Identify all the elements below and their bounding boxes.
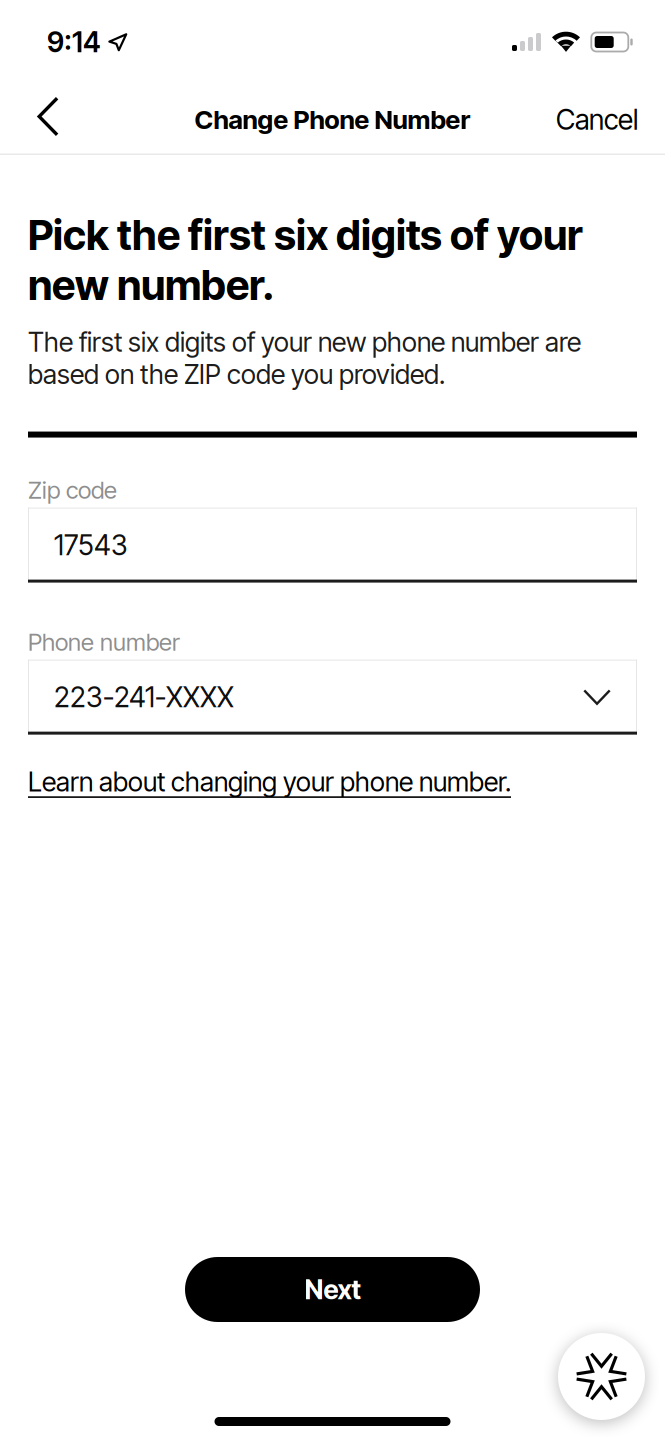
button[interactable]: 223-241-XXXX (28, 660, 637, 735)
staticText: Phone number (28, 628, 180, 657)
button[interactable]: Next (185, 1257, 480, 1322)
staticText: Learn about changing your phone number. (28, 766, 511, 798)
staticText: Next (304, 1273, 360, 1306)
staticText: 17543 (54, 528, 128, 562)
button[interactable]: Learn about changing your phone number. (28, 766, 511, 798)
staticText: Change Phone Number (194, 104, 470, 135)
button[interactable]: Cancel (556, 87, 638, 151)
staticText: Cancel (556, 103, 638, 136)
button[interactable]: Back (16, 87, 80, 151)
staticText: Pick the first six digits of your new nu… (28, 210, 583, 310)
staticText: 223-241-XXXX (54, 680, 234, 714)
staticText: The first six digits of your new phone n… (28, 326, 581, 390)
staticText: Zip code (28, 476, 117, 505)
staticText: 9:14 (47, 25, 101, 59)
button[interactable]: Assistant (558, 1333, 645, 1420)
button[interactable]: 17543 (28, 508, 637, 583)
